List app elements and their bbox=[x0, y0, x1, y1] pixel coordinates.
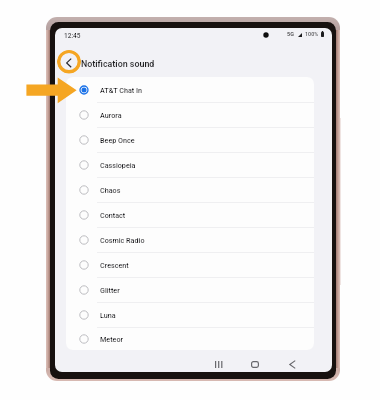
staticText: Aurora bbox=[100, 111, 122, 119]
button[interactable]: Cosmic Radio bbox=[66, 227, 314, 252]
staticText: Cosmic Radio bbox=[100, 236, 145, 244]
staticText: 12:45 bbox=[64, 32, 81, 40]
staticText: AT&T Chat In bbox=[100, 86, 143, 94]
button[interactable]: Glitter bbox=[66, 277, 314, 302]
button[interactable]: AT&T Chat In bbox=[66, 77, 314, 102]
button[interactable]: Meteor bbox=[66, 327, 314, 350]
button[interactable]: Cassiopeia bbox=[66, 152, 314, 177]
staticText: Glitter bbox=[100, 286, 120, 294]
button[interactable]: Home bbox=[245, 354, 265, 372]
staticText: Luna bbox=[100, 311, 116, 319]
staticText: Cassiopeia bbox=[100, 161, 136, 169]
button[interactable]: Contact bbox=[66, 202, 314, 227]
staticText: Meteor bbox=[100, 335, 123, 343]
staticText: Crescent bbox=[100, 261, 129, 269]
button[interactable]: Aurora bbox=[66, 102, 314, 127]
staticText: Contact bbox=[100, 211, 126, 219]
staticText: Beep Once bbox=[100, 136, 135, 144]
staticText: 100% bbox=[305, 31, 319, 37]
button[interactable]: Beep Once bbox=[66, 127, 314, 152]
staticText: Notification sound bbox=[81, 59, 155, 69]
button[interactable]: Recents bbox=[209, 354, 229, 372]
button[interactable]: Crescent bbox=[66, 252, 314, 277]
button[interactable]: Chaos bbox=[66, 177, 314, 202]
staticText: Chaos bbox=[100, 186, 121, 194]
button[interactable]: Luna bbox=[66, 302, 314, 327]
button[interactable]: Back bbox=[283, 354, 303, 372]
button[interactable]: Back bbox=[57, 50, 81, 74]
staticText: 5G bbox=[287, 31, 294, 37]
